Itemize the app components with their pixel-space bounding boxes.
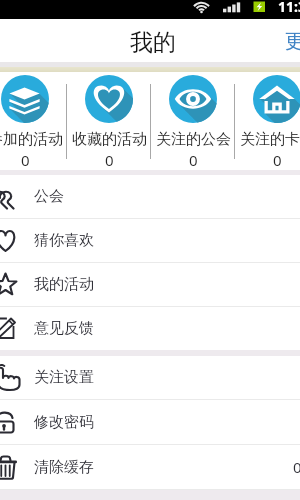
button[interactable]: 更多 [279, 21, 300, 62]
staticText: 0 [105, 150, 114, 170]
button[interactable]: 修改密码 [0, 400, 300, 444]
button[interactable]: 参加的活动 [0, 72, 67, 170]
staticText: 清除缓存 [34, 458, 94, 477]
button[interactable]: 收藏的活动 [67, 72, 151, 170]
button[interactable]: 清除缓存 [0, 445, 300, 489]
button[interactable]: 我的活动 [0, 263, 300, 306]
staticText: 关注的公会 [156, 130, 231, 149]
button[interactable]: 关注的公会 [151, 72, 235, 170]
button[interactable]: 公会 [0, 175, 300, 218]
staticText: 11:37 [278, 0, 300, 16]
staticText: 0 [21, 150, 30, 170]
staticText: 我的活动 [34, 275, 94, 294]
staticText: 公会 [34, 187, 64, 206]
staticText: 意见反馈 [34, 319, 94, 338]
staticText: 0 M [293, 457, 300, 477]
staticText: 我的 [130, 28, 176, 57]
button[interactable]: 意见反馈 [0, 307, 300, 350]
staticText: 0 [189, 150, 198, 170]
staticText: 0 [273, 150, 282, 170]
staticText: 关注设置 [34, 368, 94, 387]
button[interactable]: 关注设置 [0, 356, 300, 399]
button[interactable]: 关注的卡片 [235, 72, 300, 170]
staticText: 关注的卡片 [240, 130, 300, 149]
staticText: 猜你喜欢 [34, 231, 94, 250]
staticText: 参加的活动 [0, 130, 63, 149]
button[interactable]: 猜你喜欢 [0, 219, 300, 262]
staticText: 收藏的活动 [72, 130, 147, 149]
staticText: 修改密码 [34, 413, 94, 432]
staticText: 更多 [285, 29, 300, 54]
